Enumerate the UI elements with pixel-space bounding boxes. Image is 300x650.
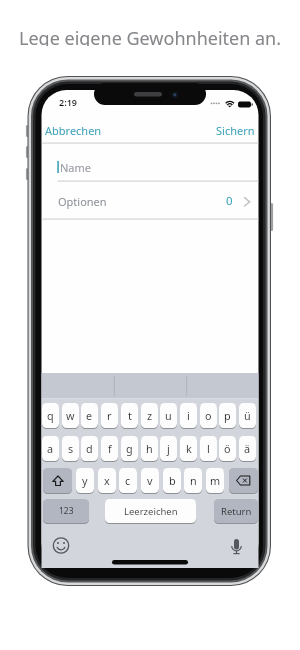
staticText: y [82,473,88,488]
staticText: Leerzeichen [124,505,178,518]
button[interactable]: f [101,436,118,461]
button[interactable]: y [76,468,94,493]
button[interactable]: Leerzeichen [105,499,196,523]
staticText: z [147,408,153,423]
staticText: r [107,408,112,423]
staticText: Optionen [58,194,107,209]
staticText: b [169,473,176,488]
staticText: q [47,408,54,423]
staticText: k [186,441,192,456]
staticText: j [167,441,170,456]
button[interactable]: l [200,436,217,461]
staticText: 0 [226,193,233,209]
staticText: 2:19 [59,96,77,108]
staticText: s [68,441,74,456]
staticText: ü [244,408,251,423]
staticText: Sichern [216,123,255,138]
staticText: x [104,473,110,488]
button[interactable]: c [119,468,137,493]
button[interactable]: z [141,403,158,428]
staticText: e [86,408,93,423]
staticText: l [207,441,210,456]
staticText: Name [60,160,92,175]
staticText: u [165,408,172,423]
button[interactable]: g [121,436,138,461]
button[interactable]: Sichern [185,122,255,138]
staticText: t [128,408,132,423]
button[interactable]: i [180,403,197,428]
staticText: ö [224,441,231,456]
button[interactable] [227,536,246,555]
staticText: v [147,473,153,488]
staticText: n [190,473,197,488]
staticText: g [126,441,133,456]
button[interactable] [52,536,71,555]
staticText: h [146,441,153,456]
button[interactable]: 123 [43,499,89,523]
button[interactable]: ö [219,436,236,461]
button[interactable]: q [42,403,59,428]
button[interactable]: o [200,403,217,428]
button[interactable]: Optionen [58,193,138,209]
button[interactable] [43,468,72,493]
button[interactable]: Abbrechen [45,122,115,138]
button[interactable]: h [141,436,158,461]
staticText: a [47,441,54,456]
staticText: i [187,408,190,423]
button[interactable]: m [206,468,224,493]
staticText: Abbrechen [45,123,102,138]
button[interactable]: k [180,436,197,461]
button[interactable]: w [62,403,79,428]
button[interactable] [229,468,258,493]
button[interactable]: Name [60,159,140,175]
button[interactable]: Return [214,499,258,523]
staticText: d [86,441,93,456]
staticText: c [125,473,131,488]
staticText: m [210,473,221,488]
staticText: o [205,408,212,423]
button[interactable]: p [219,403,236,428]
staticText: p [224,408,231,423]
staticText: ä [244,441,251,456]
button[interactable]: d [81,436,98,461]
button[interactable]: x [98,468,116,493]
button[interactable]: v [141,468,159,493]
button[interactable]: u [160,403,177,428]
staticText: Return [221,505,252,518]
button[interactable]: ä [239,436,256,461]
button[interactable]: e [81,403,98,428]
staticText: w [66,408,75,423]
staticText: f [108,441,112,456]
staticText: 123 [59,505,74,517]
button[interactable]: ü [239,403,256,428]
button[interactable]: b [163,468,181,493]
button[interactable]: t [121,403,138,428]
button[interactable]: s [62,436,79,461]
staticText: Lege eigene Gewohnheiten an. [19,26,282,46]
button[interactable]: n [184,468,202,493]
button[interactable]: a [42,436,59,461]
button[interactable]: j [160,436,177,461]
button[interactable]: r [101,403,118,428]
